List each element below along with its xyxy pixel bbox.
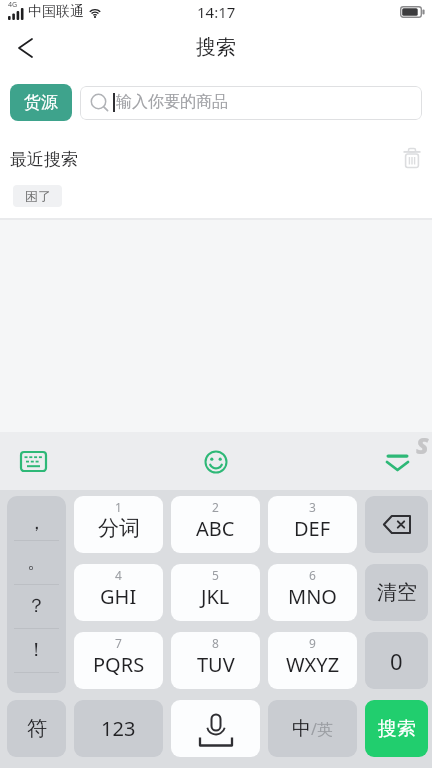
button[interactable] <box>14 446 54 478</box>
staticText: 输入你要的商品 <box>116 92 228 112</box>
staticText: 。 <box>27 550 46 574</box>
staticText: 中国联通 <box>28 3 84 21</box>
button[interactable]: 货源 <box>10 84 72 121</box>
button[interactable]: 输入你要的商品 <box>80 86 422 120</box>
staticText: 4 <box>115 567 122 583</box>
staticText: 0 <box>390 646 403 676</box>
staticText: ， <box>27 511 46 535</box>
button[interactable]: ， <box>7 496 66 693</box>
staticText: 清空 <box>377 580 417 605</box>
staticText: 8 <box>212 635 219 651</box>
staticText: 3 <box>309 499 316 515</box>
staticText: S <box>416 429 429 460</box>
staticText: 2 <box>212 499 219 515</box>
button[interactable]: 0 <box>365 632 428 689</box>
button[interactable]: 8 <box>171 632 260 689</box>
staticText: ！ <box>27 638 46 662</box>
staticText: GHI <box>100 583 137 610</box>
staticText: JKL <box>201 583 230 610</box>
staticText: /英 <box>311 718 333 740</box>
staticText: 最近搜索 <box>10 149 78 170</box>
staticText: ？ <box>27 594 46 618</box>
staticText: TUV <box>197 651 235 678</box>
button[interactable] <box>171 700 260 757</box>
staticText: 4G <box>8 0 18 10</box>
button[interactable]: 1 <box>74 496 163 553</box>
staticText: ABC <box>196 515 235 542</box>
staticText: WXYZ <box>286 651 340 678</box>
staticText: 6 <box>309 567 316 583</box>
staticText: 7 <box>115 635 122 651</box>
staticText: 搜索 <box>378 717 416 741</box>
button[interactable] <box>398 144 426 172</box>
button[interactable]: 123 <box>74 700 163 757</box>
staticText: PQRS <box>93 651 145 678</box>
staticText: 困了 <box>25 188 51 204</box>
staticText: 14:17 <box>197 2 236 22</box>
button[interactable]: 符 <box>7 700 66 757</box>
button[interactable] <box>365 496 428 553</box>
staticText: 中 <box>292 717 311 741</box>
staticText: 9 <box>309 635 316 651</box>
button[interactable]: 5 <box>171 564 260 621</box>
staticText: 货源 <box>24 92 58 113</box>
staticText: 搜索 <box>196 35 236 60</box>
button[interactable]: 困了 <box>13 185 62 207</box>
staticText: 5 <box>212 567 219 583</box>
button[interactable]: 4 <box>74 564 163 621</box>
button[interactable]: 清空 <box>365 564 428 621</box>
button[interactable] <box>382 448 414 476</box>
button[interactable]: 7 <box>74 632 163 689</box>
staticText: 符 <box>27 716 47 741</box>
button[interactable]: 3 <box>268 496 357 553</box>
button[interactable] <box>200 446 232 478</box>
staticText: 分词 <box>98 515 140 541</box>
button[interactable] <box>10 32 42 64</box>
button[interactable]: 搜索 <box>365 700 428 757</box>
staticText: 1 <box>115 499 122 515</box>
staticText: MNO <box>288 583 337 610</box>
staticText: DEF <box>294 515 331 542</box>
staticText: 123 <box>101 715 136 742</box>
button[interactable]: 6 <box>268 564 357 621</box>
button[interactable]: 2 <box>171 496 260 553</box>
button[interactable]: 中 <box>268 700 357 757</box>
button[interactable]: 9 <box>268 632 357 689</box>
